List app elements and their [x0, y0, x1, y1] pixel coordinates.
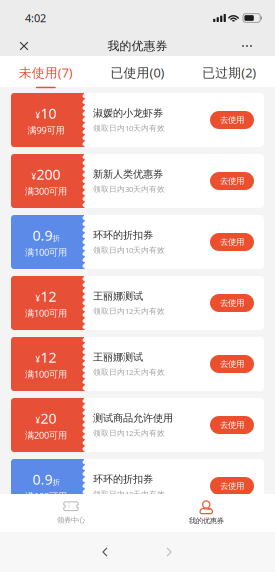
- button[interactable]: 淑媛的小龙虾券: [11, 93, 264, 147]
- button[interactable]: 环环的折扣券: [11, 215, 264, 269]
- staticText: 折: [52, 233, 59, 243]
- staticText: 满200可用: [25, 429, 67, 441]
- staticText: ¥: [35, 110, 40, 121]
- staticText: 0.9: [32, 470, 52, 489]
- staticText: 环环的折扣券: [93, 229, 153, 242]
- staticText: 领取日内12天内有效: [93, 367, 165, 377]
- staticText: ¥: [35, 293, 40, 304]
- staticText: 满100可用: [25, 307, 67, 319]
- staticText: 去使用: [220, 481, 244, 491]
- staticText: 20: [40, 409, 56, 428]
- staticText: 满300可用: [25, 185, 67, 197]
- staticText: 淑媛的小龙虾券: [93, 107, 163, 120]
- staticText: 去使用: [220, 115, 244, 125]
- staticText: 去使用: [220, 298, 244, 308]
- button[interactable]: 未使用(7): [0, 56, 92, 87]
- staticText: ¥: [35, 354, 40, 365]
- staticText: 新新人类优惠券: [93, 168, 163, 181]
- staticText: 去使用: [220, 359, 244, 369]
- staticText: 我的优惠券: [189, 516, 224, 525]
- staticText: 未使用(7): [19, 64, 73, 81]
- button[interactable]: 环环的折扣券: [11, 459, 264, 513]
- button[interactable]: More: [228, 36, 266, 56]
- button[interactable]: Close: [5, 36, 43, 56]
- staticText: ¥: [35, 415, 40, 426]
- staticText: 领取日内10天内有效: [93, 489, 165, 499]
- staticText: 满99可用: [27, 124, 64, 136]
- staticText: 满100可用: [25, 490, 67, 502]
- staticText: 0.9: [32, 226, 52, 245]
- staticText: 去使用: [220, 237, 244, 247]
- button[interactable]: 王丽娜测试: [11, 276, 264, 330]
- staticText: 去使用: [220, 176, 244, 186]
- button[interactable]: Back: [88, 538, 122, 566]
- staticText: ¥: [31, 171, 36, 182]
- staticText: 已使用(0): [110, 64, 164, 81]
- staticText: 王丽娜测试: [93, 351, 143, 364]
- staticText: 已过期(2): [202, 64, 256, 81]
- staticText: 领取日内10天内有效: [93, 123, 165, 133]
- staticText: 折: [52, 477, 59, 487]
- button[interactable]: 已使用(0): [92, 56, 183, 87]
- staticText: 我的优惠券: [107, 38, 167, 53]
- staticText: 测试商品允许使用: [93, 412, 173, 425]
- button[interactable]: Forward: [152, 538, 186, 566]
- staticText: 去使用: [220, 420, 244, 430]
- staticText: 环环的折扣券: [93, 473, 153, 486]
- staticText: 4:02: [25, 11, 46, 25]
- button[interactable]: 领券中心: [0, 494, 137, 532]
- staticText: 领取日内10天内有效: [93, 245, 165, 255]
- staticText: 12: [40, 287, 56, 306]
- staticText: 王丽娜测试: [93, 290, 143, 303]
- staticText: 12: [40, 348, 56, 367]
- button[interactable]: 已过期(2): [183, 56, 275, 87]
- staticText: 领券中心: [57, 515, 85, 525]
- button[interactable]: 测试商品允许使用: [11, 398, 264, 452]
- staticText: 满100可用: [25, 246, 67, 258]
- staticText: 10: [40, 104, 56, 123]
- staticText: 满100可用: [25, 368, 67, 380]
- staticText: 领取日内12天内有效: [93, 428, 165, 438]
- button[interactable]: 我的优惠券: [137, 494, 275, 532]
- button[interactable]: 新新人类优惠券: [11, 154, 264, 208]
- button[interactable]: 王丽娜测试: [11, 337, 264, 391]
- staticText: 200: [36, 165, 60, 184]
- staticText: 领取日内30天内有效: [93, 184, 165, 194]
- staticText: 领取日内12天内有效: [93, 306, 165, 316]
